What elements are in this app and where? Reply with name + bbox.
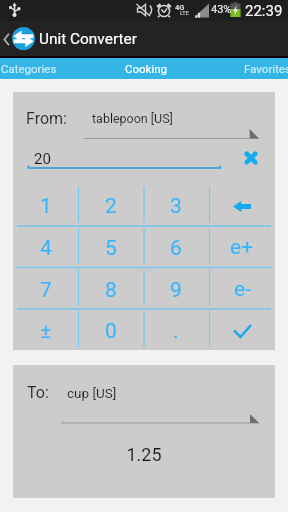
staticText: tablepoon [US] bbox=[92, 111, 173, 126]
other: Done bbox=[234, 325, 251, 337]
button[interactable]: ± bbox=[13, 310, 78, 350]
staticText: 43% bbox=[211, 3, 232, 16]
staticText: 4 bbox=[40, 236, 52, 261]
staticText: Favorites bbox=[244, 62, 288, 75]
staticText: cup [US] bbox=[67, 385, 117, 401]
button[interactable]: 2 bbox=[78, 184, 143, 226]
staticText: 22:39 bbox=[245, 2, 283, 20]
button[interactable]: Categories bbox=[0, 58, 88, 79]
button[interactable]: Done bbox=[209, 310, 275, 350]
staticText: ± bbox=[40, 319, 52, 344]
button[interactable]: Favorites bbox=[208, 58, 288, 79]
staticText: 1.25 bbox=[13, 444, 275, 465]
button[interactable]: 5 bbox=[78, 226, 143, 268]
staticText: . bbox=[173, 319, 179, 344]
button[interactable]: tablepoon [US] bbox=[84, 92, 259, 145]
staticText: 6 bbox=[170, 236, 182, 261]
staticText: e- bbox=[234, 277, 251, 302]
staticText: 1 bbox=[40, 194, 52, 219]
staticText: e+ bbox=[230, 235, 254, 260]
staticText: To: bbox=[27, 383, 49, 402]
button[interactable]: Cooking bbox=[87, 58, 206, 79]
button[interactable]: 0 bbox=[78, 310, 143, 350]
staticText: Categories bbox=[1, 62, 57, 75]
button[interactable]: 8 bbox=[78, 268, 143, 310]
button[interactable]: 6 bbox=[143, 226, 209, 268]
staticText: 8 bbox=[105, 278, 117, 303]
staticText: 2 bbox=[105, 194, 117, 219]
button[interactable]: Clear bbox=[239, 146, 263, 170]
button[interactable]: Backspace bbox=[209, 184, 275, 226]
button[interactable]: 9 bbox=[143, 268, 209, 310]
staticText: 9 bbox=[170, 278, 182, 303]
staticText: Unit Converter bbox=[39, 30, 137, 48]
other: Backspace bbox=[233, 201, 251, 212]
staticText: 7 bbox=[40, 278, 52, 303]
button[interactable]: . bbox=[143, 310, 209, 350]
staticText: From: bbox=[26, 109, 67, 128]
staticText: 3 bbox=[170, 194, 182, 219]
staticText: 0 bbox=[105, 319, 117, 344]
staticText: 5 bbox=[105, 236, 117, 261]
button[interactable]: cup [US] bbox=[61, 377, 259, 425]
button[interactable]: 1 bbox=[13, 184, 78, 226]
staticText: 4G bbox=[175, 3, 185, 12]
button[interactable]: e- bbox=[209, 268, 275, 310]
staticText: LTE bbox=[180, 10, 189, 16]
button[interactable]: e+ bbox=[209, 226, 275, 268]
button[interactable]: Up bbox=[2, 26, 11, 52]
button[interactable]: 7 bbox=[13, 268, 78, 310]
staticText: Cooking bbox=[125, 62, 168, 75]
button[interactable]: 3 bbox=[143, 184, 209, 226]
staticText: 20 bbox=[34, 150, 51, 168]
button[interactable]: 4 bbox=[13, 226, 78, 268]
